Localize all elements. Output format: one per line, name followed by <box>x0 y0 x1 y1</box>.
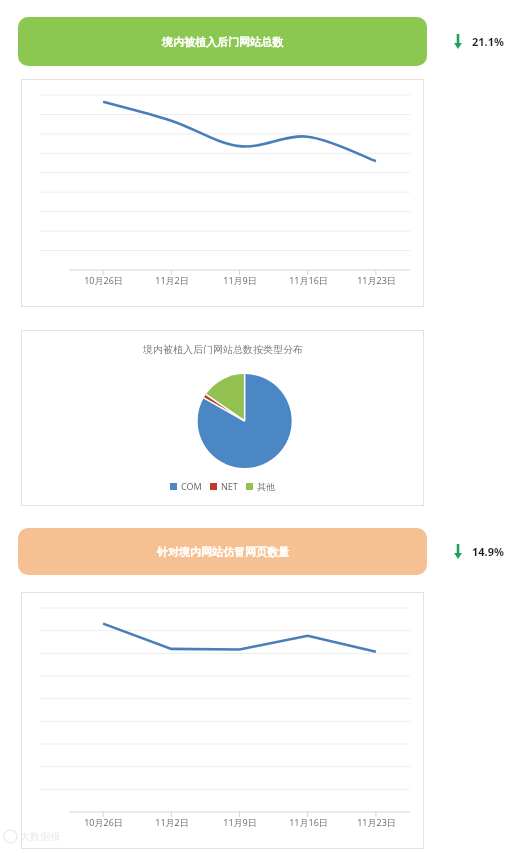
staticText: 21.1% <box>472 34 504 49</box>
staticText: 境内被植入后门网站总数 <box>162 35 283 49</box>
staticText: 境内被植入后门网站总数按类型分布 <box>143 343 303 356</box>
button[interactable]: NET <box>210 480 238 492</box>
button[interactable]: Decrease <box>449 17 467 66</box>
button[interactable]: 10月26日 <box>21 592 424 849</box>
staticText: 其他 <box>257 481 275 492</box>
button[interactable]: 境内被植入后门网站总数 <box>18 17 427 66</box>
staticText: 11月2日 <box>155 274 189 286</box>
staticText: 11月9日 <box>223 274 257 286</box>
staticText: COM <box>181 480 202 492</box>
staticText: 11月23日 <box>357 816 396 828</box>
button[interactable]: 10月26日 <box>21 79 424 307</box>
staticText: 11月2日 <box>155 816 189 828</box>
button[interactable]: 境内被植入后门网站总数按类型分布 <box>21 330 424 506</box>
staticText: 14.9% <box>472 544 504 559</box>
button[interactable]: COM <box>170 480 202 492</box>
button[interactable]: Decrease <box>449 528 467 575</box>
staticText: 11月23日 <box>357 274 396 286</box>
staticText: 11月9日 <box>223 816 257 828</box>
staticText: 10月26日 <box>84 816 123 828</box>
staticText: 10月26日 <box>84 274 123 286</box>
staticText: 大数据报 <box>20 830 60 843</box>
staticText: NET <box>221 480 238 492</box>
staticText: 针对境内网站仿冒网页数量 <box>157 545 289 559</box>
staticText: 11月16日 <box>289 816 328 828</box>
staticText: 11月16日 <box>289 274 328 286</box>
button[interactable]: 其他 <box>246 481 275 492</box>
button[interactable]: 针对境内网站仿冒网页数量 <box>18 528 427 575</box>
